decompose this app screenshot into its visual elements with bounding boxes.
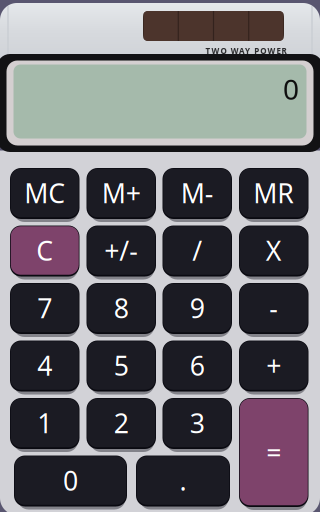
button[interactable]: 6 <box>162 336 232 394</box>
button[interactable]: 8 <box>86 279 156 337</box>
staticText: MR <box>253 175 294 211</box>
staticText: +/- <box>104 233 138 268</box>
button[interactable]: X <box>239 221 308 279</box>
button[interactable]: 5 <box>86 336 156 394</box>
staticText: 4 <box>37 348 52 383</box>
button[interactable]: - <box>239 279 308 337</box>
staticText: . <box>179 463 186 498</box>
staticText: 7 <box>37 290 52 326</box>
button[interactable]: 9 <box>162 279 232 337</box>
staticText: 2 <box>114 405 129 441</box>
button[interactable]: M- <box>162 164 232 222</box>
staticText: 3 <box>190 405 205 441</box>
button[interactable]: . <box>136 451 230 509</box>
button[interactable]: MC <box>10 164 79 222</box>
button[interactable]: +/- <box>86 221 156 279</box>
staticText: C <box>36 233 53 268</box>
button[interactable]: 1 <box>10 394 79 452</box>
staticText: TWO WAY POWER <box>205 46 287 56</box>
staticText: 9 <box>190 290 205 326</box>
button[interactable]: 7 <box>10 279 79 337</box>
button[interactable]: + <box>239 336 308 394</box>
button[interactable]: = <box>239 394 308 510</box>
staticText: 1 <box>37 405 52 441</box>
staticText: 0 <box>283 70 299 108</box>
button[interactable]: M+ <box>86 164 156 222</box>
button[interactable]: / <box>162 221 232 279</box>
button[interactable]: MR <box>239 164 308 222</box>
staticText: M+ <box>102 175 141 211</box>
staticText: X <box>266 233 282 268</box>
button[interactable]: 3 <box>162 394 232 452</box>
staticText: 6 <box>190 348 205 383</box>
staticText: = <box>266 434 281 470</box>
button[interactable]: 4 <box>10 336 79 394</box>
button[interactable]: 2 <box>86 394 156 452</box>
staticText: M- <box>181 175 214 211</box>
staticText: MC <box>24 175 65 211</box>
button[interactable]: 0 <box>14 451 127 509</box>
button[interactable]: C <box>10 221 79 279</box>
staticText: 0 <box>63 463 78 498</box>
staticText: - <box>269 290 278 326</box>
staticText: / <box>192 233 202 268</box>
staticText: 5 <box>114 348 129 383</box>
staticText: 8 <box>114 290 129 326</box>
staticText: + <box>266 348 281 383</box>
